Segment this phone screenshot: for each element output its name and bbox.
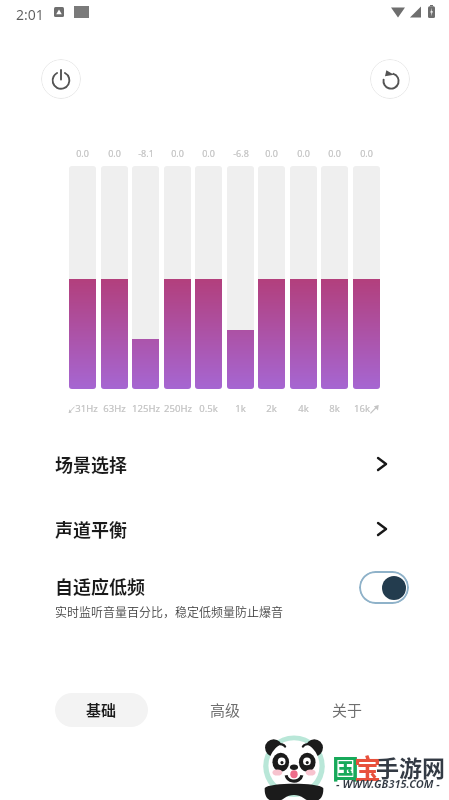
staticText: 16k [354, 402, 370, 415]
staticText: 高级 [210, 699, 241, 721]
staticText: 国 [332, 748, 359, 787]
staticText: 场景选择 [55, 451, 127, 477]
button[interactable]: Band 0.5k [195, 166, 222, 389]
staticText: -8.1 [138, 147, 154, 159]
staticText: - WWW.GB315.COM - [336, 776, 440, 791]
staticText: 0.0 [202, 147, 215, 159]
button[interactable]: Band 16k [353, 166, 380, 389]
button[interactable]: 自适应低频 [55, 573, 355, 620]
staticText: 0.0 [76, 147, 89, 159]
staticText: 关于 [332, 699, 363, 721]
staticText: 125Hz [132, 402, 160, 415]
button[interactable]: Band 31Hz [69, 166, 96, 389]
staticText: 手游网 [376, 750, 445, 783]
button[interactable]: Adaptive bass toggle [359, 571, 409, 604]
staticText: 8k [329, 402, 340, 415]
staticText: 250Hz [164, 402, 192, 415]
staticText: 0.0 [108, 147, 121, 159]
staticText: 0.0 [297, 147, 310, 159]
button[interactable]: 高级 [179, 693, 272, 727]
staticText: 4k [298, 402, 309, 415]
button[interactable]: 关于 [301, 693, 394, 727]
staticText: 实时监听音量百分比，稳定低频量防止爆音 [55, 603, 284, 620]
staticText: 基础 [86, 699, 117, 721]
staticText: 1k [235, 402, 246, 415]
staticText: 自适应低频 [55, 573, 145, 599]
staticText: 31Hz [75, 402, 98, 415]
button[interactable]: Band 1k [227, 166, 254, 389]
staticText: 声道平衡 [55, 516, 127, 542]
staticText: -6.8 [233, 147, 249, 159]
staticText: 0.0 [328, 147, 341, 159]
staticText: 宝 [354, 748, 381, 787]
button[interactable]: Power [41, 59, 81, 99]
button[interactable]: 基础 [55, 693, 148, 727]
staticText: 2k [266, 402, 277, 415]
staticText: 0.5k [199, 402, 218, 415]
staticText: 0.0 [360, 147, 373, 159]
button[interactable]: 声道平衡 [55, 509, 387, 549]
staticText: 63Hz [103, 402, 126, 415]
button[interactable]: Band 250Hz [164, 166, 191, 389]
button[interactable]: Band 2k [258, 166, 285, 389]
button[interactable]: Band 8k [321, 166, 348, 389]
button[interactable]: 场景选择 [55, 444, 387, 484]
staticText: 0.0 [265, 147, 278, 159]
button[interactable]: Band 125Hz [132, 166, 159, 389]
button[interactable]: Band 4k [290, 166, 317, 389]
staticText: 0.0 [171, 147, 184, 159]
button[interactable]: Band 63Hz [101, 166, 128, 389]
staticText: 2:01 [16, 5, 44, 24]
button[interactable]: Reset [370, 59, 410, 99]
